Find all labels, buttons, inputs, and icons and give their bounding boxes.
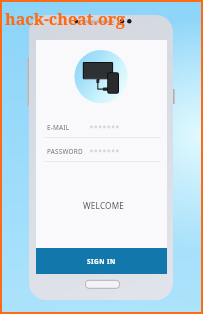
staticText: hack-cheat.org [5, 8, 126, 30]
staticText: WELCOME [83, 200, 125, 211]
staticText: SIGN IN [87, 257, 116, 266]
staticText: E-MAIL [47, 123, 70, 132]
button[interactable]: PASSWORD [36, 138, 167, 161]
staticText: PASSWORD [47, 147, 83, 156]
button[interactable]: E-MAIL [36, 114, 167, 137]
button[interactable]: SIGN IN [36, 248, 167, 274]
